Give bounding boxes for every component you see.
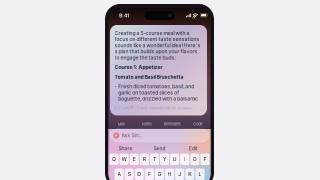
button[interactable]: F xyxy=(145,168,154,180)
staticText: S xyxy=(128,171,131,177)
button[interactable]: Notes xyxy=(134,121,159,127)
staticText: H xyxy=(168,171,172,177)
staticText: Share xyxy=(118,146,132,151)
button[interactable]: W xyxy=(120,153,129,165)
button[interactable]: Share xyxy=(108,145,142,152)
staticText: E xyxy=(133,156,136,162)
button[interactable]: O xyxy=(190,153,199,165)
staticText: Mail xyxy=(118,122,125,126)
button[interactable]: D xyxy=(135,168,144,180)
staticText: Notes xyxy=(142,122,152,126)
button[interactable]: G xyxy=(155,168,164,180)
button[interactable]: Q xyxy=(109,153,119,165)
staticText: Q xyxy=(112,156,116,162)
button[interactable]: L xyxy=(195,168,204,180)
staticText: ChatGPT · Check important info for mista… xyxy=(119,106,193,110)
staticText: D xyxy=(137,171,141,177)
staticText: Y xyxy=(163,156,166,162)
button[interactable]: U xyxy=(170,153,179,165)
button[interactable]: T xyxy=(150,153,159,165)
staticText: P xyxy=(203,156,206,162)
staticText: K xyxy=(188,171,191,177)
staticText: L xyxy=(198,171,201,177)
staticText: F xyxy=(148,171,151,177)
staticText: Course 1: Appetizer xyxy=(114,64,162,70)
button[interactable]: R xyxy=(140,153,149,165)
staticText: Fresh diced tomatoes, basil, and garlic … xyxy=(118,83,198,102)
staticText: A xyxy=(118,171,121,177)
button[interactable]: Mail xyxy=(108,121,134,127)
button[interactable]: J xyxy=(175,168,184,180)
button[interactable]: Send xyxy=(142,145,176,152)
button[interactable]: Y xyxy=(160,153,169,165)
button[interactable]: K xyxy=(185,168,194,180)
staticText: Code xyxy=(193,122,202,126)
staticText: 9:41 xyxy=(119,12,129,19)
staticText: T xyxy=(153,156,156,162)
button[interactable]: Code xyxy=(185,121,210,127)
button[interactable]: A xyxy=(114,168,124,180)
staticText: J xyxy=(178,171,181,177)
button[interactable]: Reminders xyxy=(159,121,185,127)
staticText: I xyxy=(184,156,185,162)
button[interactable]: S xyxy=(125,168,134,180)
staticText: Ask Siri… xyxy=(121,132,142,138)
staticText: W xyxy=(122,156,127,162)
staticText: U xyxy=(173,156,177,162)
staticText: R xyxy=(143,156,146,162)
staticText: · xyxy=(114,83,116,89)
staticText: Tomato and Basil Bruschetta xyxy=(114,74,183,80)
staticText: G xyxy=(157,171,161,177)
button[interactable]: I xyxy=(180,153,189,165)
staticText: Send xyxy=(153,146,165,151)
button[interactable]: Edit xyxy=(176,145,210,152)
button[interactable]: H xyxy=(165,168,174,180)
staticText: Edit xyxy=(189,146,198,151)
staticText: O xyxy=(193,156,197,162)
staticText: Creating a 5-course meal with a focus on… xyxy=(114,30,200,61)
button[interactable]: E xyxy=(130,153,139,165)
staticText: Reminders xyxy=(164,122,181,126)
button[interactable]: Ask Siri… xyxy=(110,129,208,142)
button[interactable]: P xyxy=(200,153,209,165)
